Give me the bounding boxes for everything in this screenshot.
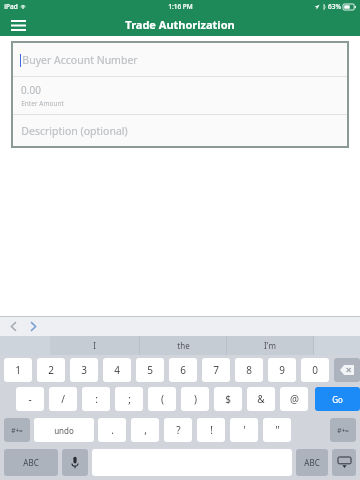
staticText: Description (optional): [21, 124, 128, 138]
staticText: !: [210, 423, 213, 437]
staticText: Trade Authorization: [125, 17, 235, 32]
staticText: .: [111, 423, 114, 437]
staticText: 8: [246, 363, 252, 377]
button[interactable]: 3: [70, 358, 98, 382]
staticText: undo: [54, 425, 74, 436]
staticText: Buyer Account Number: [22, 53, 138, 67]
staticText: 63%: [328, 2, 341, 11]
staticText: -: [28, 392, 32, 406]
button[interactable]: :: [82, 387, 110, 411]
button[interactable]: 4: [103, 358, 131, 382]
button[interactable]: @: [280, 387, 308, 411]
staticText: I'm: [264, 340, 276, 351]
button[interactable]: -: [16, 387, 44, 411]
button[interactable]: ABC: [4, 449, 58, 476]
button[interactable]: Previous field: [5, 318, 21, 334]
button[interactable]: Open navigation menu: [7, 14, 29, 36]
button[interactable]: Go: [315, 387, 360, 411]
staticText: Enter Amount: [21, 99, 64, 108]
staticText: iPad: [4, 2, 18, 11]
button[interactable]: ,: [131, 418, 159, 442]
staticText: ?: [176, 423, 181, 437]
button[interactable]: 0: [301, 358, 329, 382]
staticText: ABC: [23, 457, 39, 468]
staticText: &: [257, 392, 265, 406]
staticText: the: [177, 340, 190, 351]
staticText: Go: [332, 394, 343, 405]
button[interactable]: Delete: [334, 358, 360, 382]
staticText: 0: [312, 363, 318, 377]
staticText: 4: [114, 363, 120, 377]
staticText: ,: [144, 423, 147, 437]
button[interactable]: Description (optional): [13, 115, 347, 146]
staticText: ': [243, 423, 246, 437]
staticText: I: [93, 340, 96, 351]
button[interactable]: #+=: [330, 418, 356, 442]
staticText: 9: [279, 363, 285, 377]
button[interactable]: !: [197, 418, 225, 442]
button[interactable]: 7: [202, 358, 230, 382]
button[interactable]: 1: [4, 358, 32, 382]
staticText: 6: [180, 363, 186, 377]
button[interactable]: I'm: [227, 336, 313, 355]
button[interactable]: ): [181, 387, 209, 411]
staticText: ": [275, 423, 280, 437]
staticText: 1:16 PM: [168, 2, 193, 11]
staticText: :: [95, 392, 98, 406]
button[interactable]: 9: [268, 358, 296, 382]
button[interactable]: 2: [37, 358, 65, 382]
button[interactable]: $: [214, 387, 242, 411]
button[interactable]: Buyer Account Number: [13, 43, 347, 76]
button[interactable]: Hide keyboard: [332, 449, 356, 476]
staticText: /: [61, 392, 65, 406]
button[interactable]: 5: [136, 358, 164, 382]
staticText: ;: [128, 392, 131, 406]
staticText: 1: [15, 363, 21, 377]
staticText: (: [161, 392, 164, 406]
staticText: #+=: [337, 426, 349, 435]
button[interactable]: Dictation: [62, 449, 88, 476]
button[interactable]: undo: [34, 418, 94, 442]
button[interactable]: #+=: [4, 418, 30, 442]
button[interactable]: Next field: [25, 318, 41, 334]
staticText: 5: [147, 363, 153, 377]
staticText: ABC: [304, 457, 320, 468]
button[interactable]: 0.00: [13, 77, 347, 114]
button[interactable]: 6: [169, 358, 197, 382]
staticText: $: [225, 392, 231, 406]
button[interactable]: &: [247, 387, 275, 411]
button[interactable]: ': [230, 418, 258, 442]
staticText: 7: [213, 363, 219, 377]
button[interactable]: ": [263, 418, 291, 442]
staticText: 0.00: [21, 83, 41, 97]
button[interactable]: the: [140, 336, 226, 355]
button[interactable]: ?: [164, 418, 192, 442]
button[interactable]: I: [50, 336, 139, 355]
staticText: 2: [48, 363, 54, 377]
staticText: #+=: [11, 426, 23, 435]
button[interactable]: .: [98, 418, 126, 442]
button[interactable]: ABC: [296, 449, 328, 476]
button[interactable]: ;: [115, 387, 143, 411]
button[interactable]: (: [148, 387, 176, 411]
button[interactable]: 8: [235, 358, 263, 382]
staticText: ): [194, 392, 197, 406]
button[interactable]: /: [49, 387, 77, 411]
staticText: 3: [81, 363, 87, 377]
staticText: @: [290, 392, 299, 406]
